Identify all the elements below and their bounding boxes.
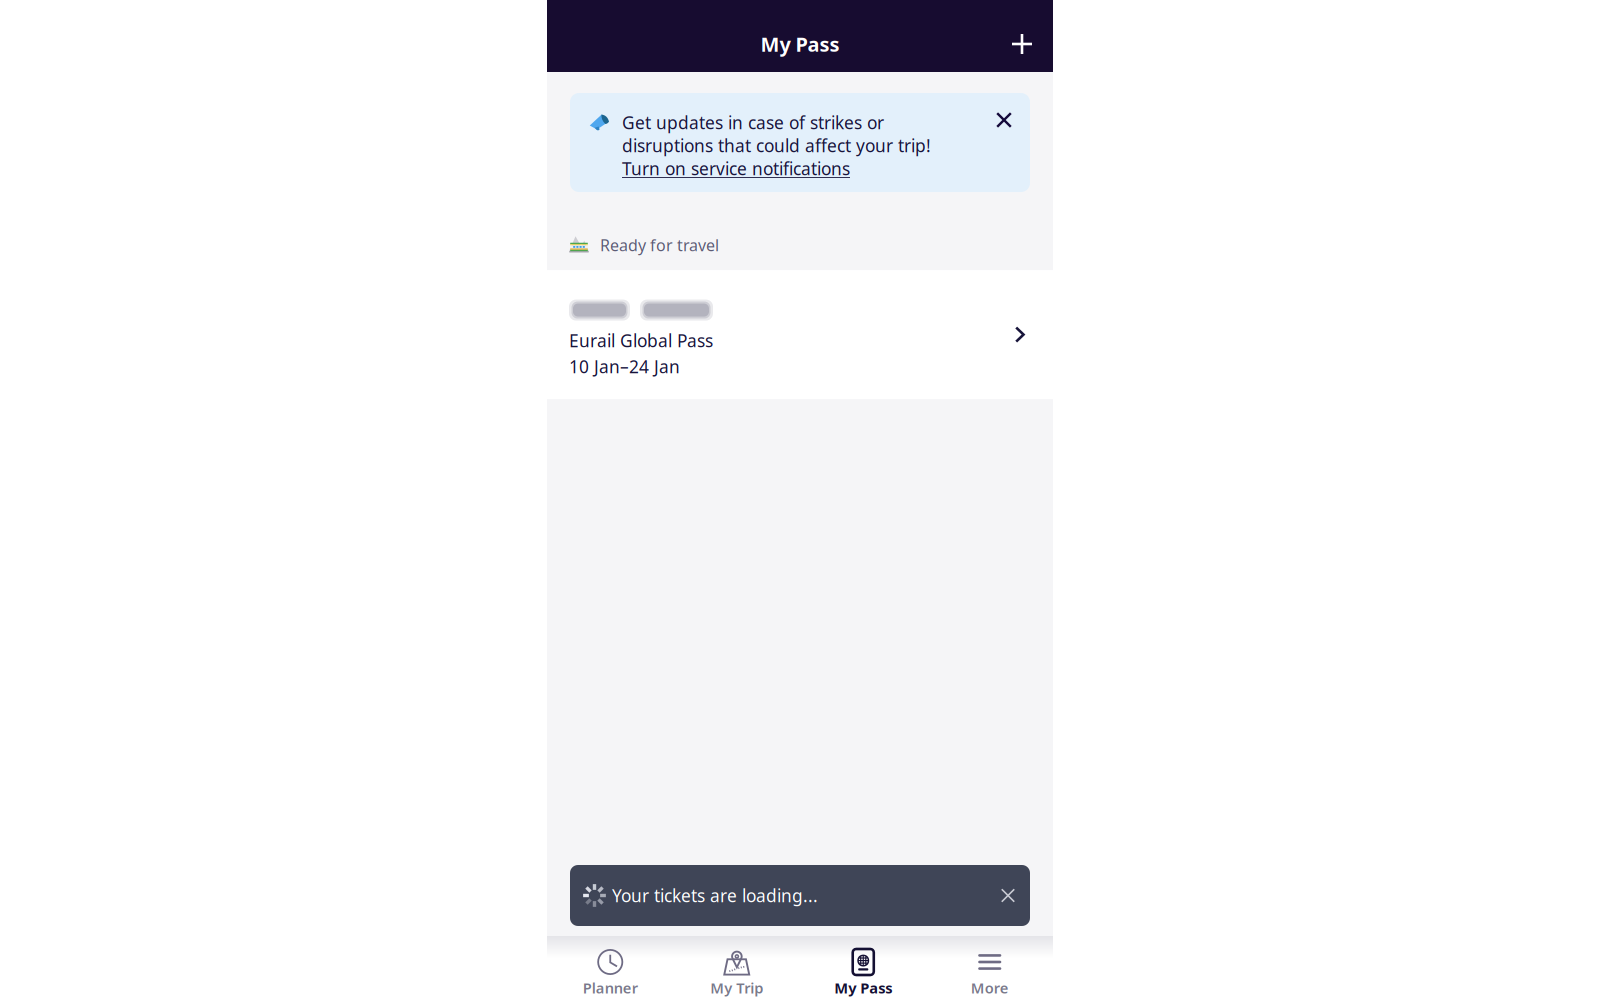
button[interactable]: Add a pass <box>1000 22 1044 66</box>
staticText: More <box>971 978 1009 997</box>
button[interactable]: Dismiss loading message <box>996 883 1020 907</box>
button[interactable]: My Trip <box>673 936 800 1000</box>
staticText: Eurail Global Pass <box>569 329 713 352</box>
staticText: Turn on service notifications <box>622 157 850 180</box>
button[interactable]: More <box>926 936 1053 1000</box>
staticText: Planner <box>583 978 638 997</box>
staticText: My Pass <box>760 31 839 57</box>
staticText: Your tickets are loading... <box>612 884 818 907</box>
button[interactable]: Dismiss notification banner <box>990 111 1016 137</box>
button[interactable]: Eurail Global Pass <box>547 270 1053 399</box>
staticText: 10 Jan–24 Jan <box>569 355 680 378</box>
staticText: disruptions that could affect your trip! <box>622 134 931 157</box>
staticText: Get updates in case of strikes or <box>622 111 884 134</box>
button[interactable]: My Pass <box>800 936 926 1000</box>
staticText: My Trip <box>710 978 763 997</box>
staticText: My Pass <box>834 978 892 997</box>
staticText: Ready for travel <box>600 234 719 256</box>
button[interactable]: Turn on service notifications <box>622 157 850 180</box>
button[interactable]: Planner <box>547 936 673 1000</box>
